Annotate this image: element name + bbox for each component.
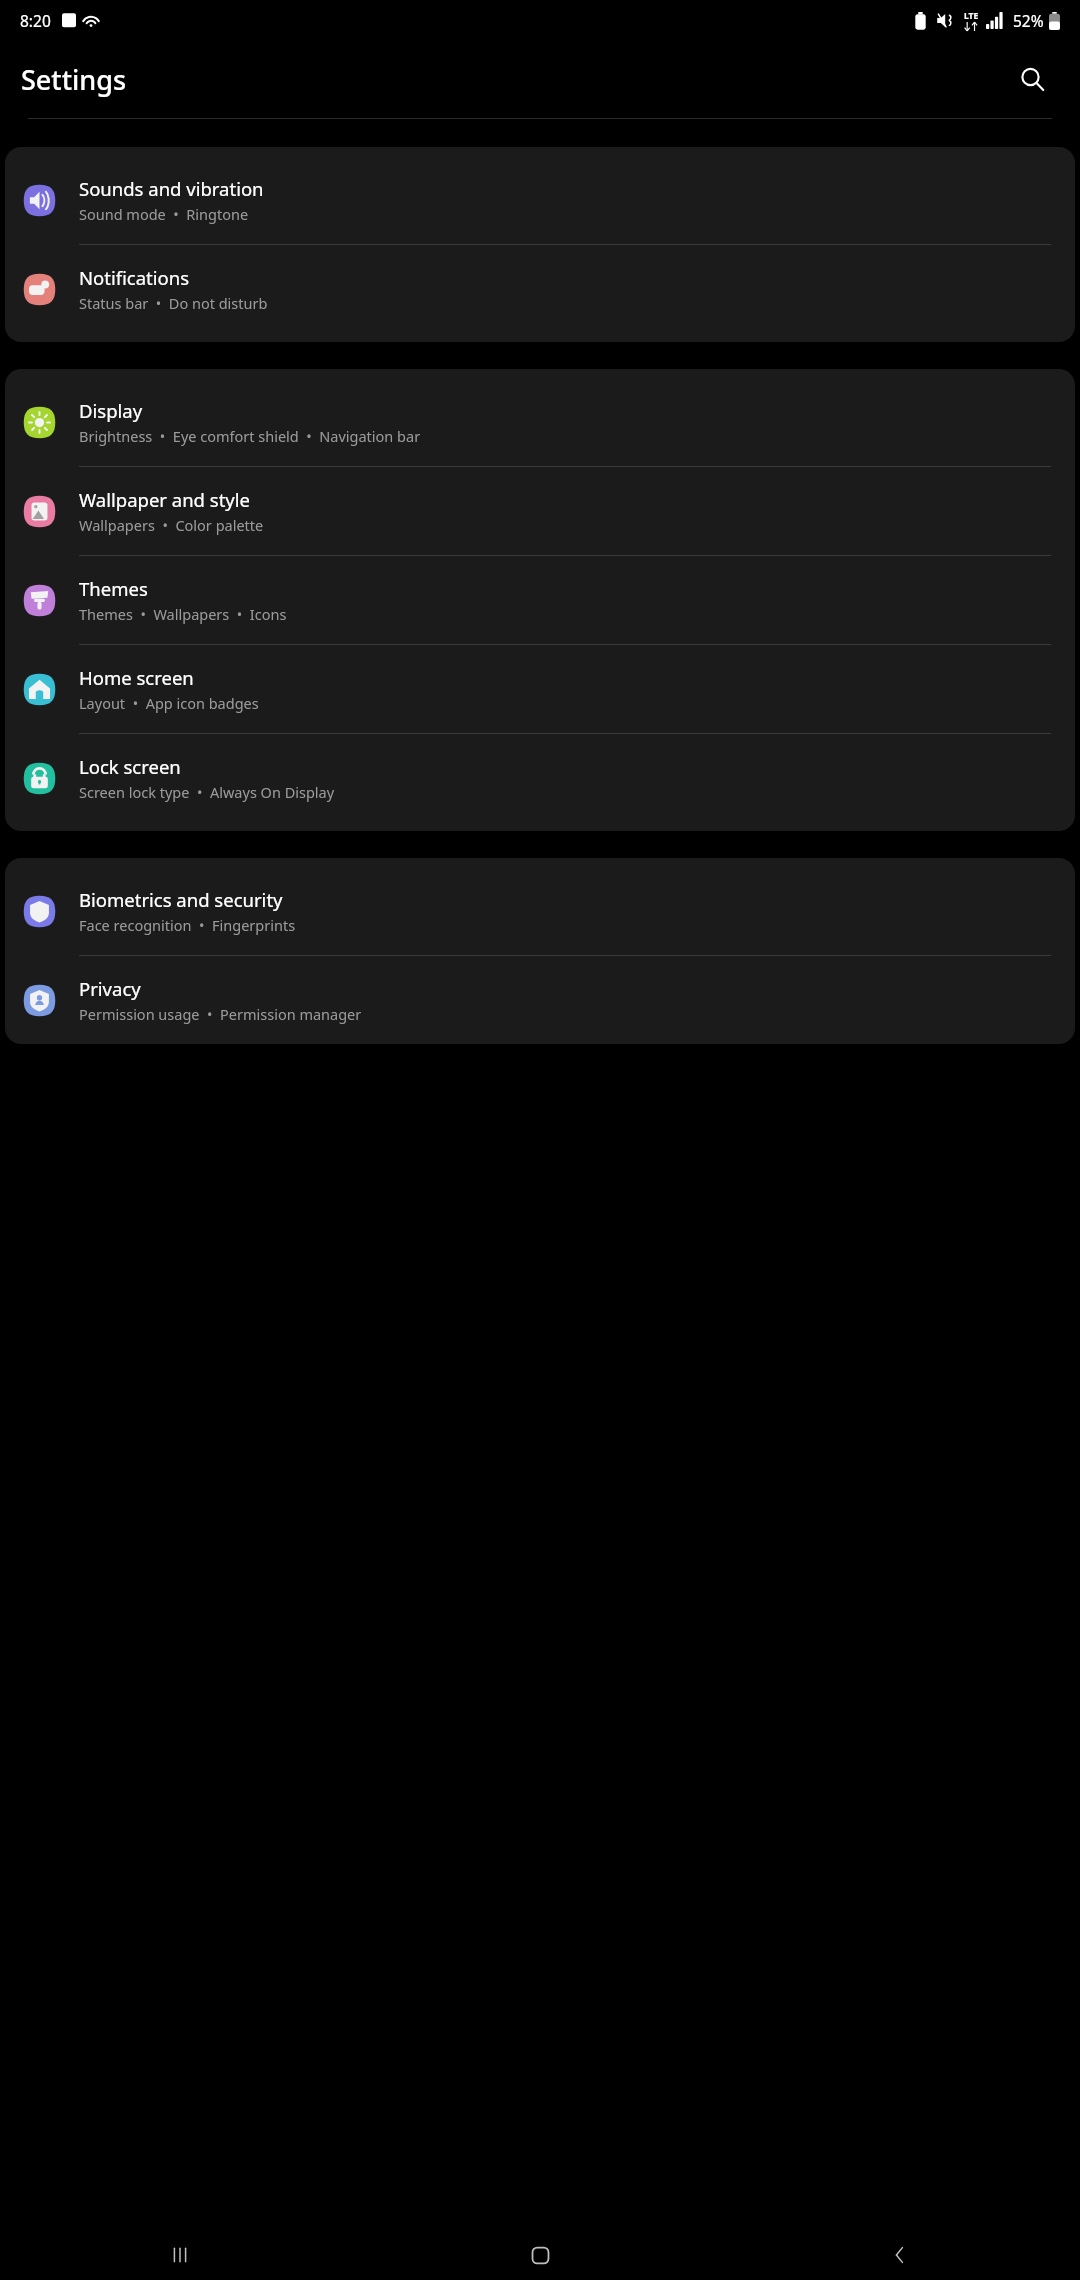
staticText: Display [79,398,143,423]
staticText: Themes [79,576,148,601]
staticText: Notifications [79,265,190,290]
button[interactable]: Search [1010,57,1054,101]
staticText: Brightness • Eye comfort shield • Naviga… [79,426,421,446]
staticText: 52% [1013,10,1044,31]
button[interactable]: Display [5,378,1075,466]
staticText: Themes • Wallpapers • Icons [79,604,287,624]
button[interactable]: Biometrics and security [5,867,1075,955]
button[interactable]: Sounds and vibration [5,156,1075,244]
staticText: Wallpaper and style [79,487,250,512]
staticText: Screen lock type • Always On Display [79,782,335,802]
staticText: Wallpapers • Color palette [79,515,264,535]
staticText: Face recognition • Fingerprints [79,915,296,935]
button[interactable]: Wallpaper and style [5,467,1075,555]
button[interactable]: Privacy [5,956,1075,1044]
button[interactable]: Lock screen [5,734,1075,822]
staticText: Lock screen [79,754,181,779]
staticText: Home screen [79,665,194,690]
staticText: Settings [21,61,127,98]
button[interactable]: Recent apps [0,2230,360,2280]
staticText: Layout • App icon badges [79,693,259,713]
staticText: Privacy [79,976,141,1001]
staticText: Status bar • Do not disturb [79,293,268,313]
button[interactable]: Notifications [5,245,1075,333]
button[interactable]: Home [360,2230,720,2280]
button[interactable]: Back [720,2230,1080,2280]
staticText: Sounds and vibration [79,176,264,201]
staticText: Biometrics and security [79,887,283,912]
staticText: LTE [964,10,979,22]
staticText: 8:20 [20,10,51,31]
staticText: Sound mode • Ringtone [79,204,249,224]
staticText: Permission usage • Permission manager [79,1004,362,1024]
button[interactable]: Home screen [5,645,1075,733]
button[interactable]: Themes [5,556,1075,644]
